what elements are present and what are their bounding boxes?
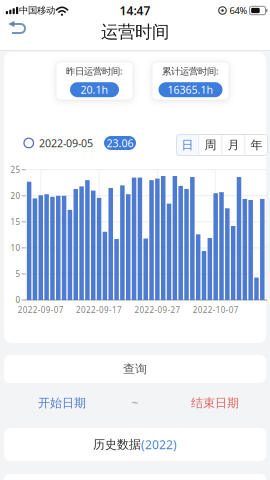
- staticText: 周: [204, 138, 216, 152]
- staticText: 运营时间: [101, 21, 169, 43]
- button[interactable]: 日: [176, 134, 198, 155]
- staticText: ~: [131, 395, 138, 411]
- button[interactable]: 查询: [4, 355, 266, 383]
- staticText: 昨日运营时间:: [66, 65, 123, 77]
- staticText: 0: [15, 295, 20, 305]
- staticText: 14:47: [119, 2, 150, 18]
- staticText: 年: [250, 138, 262, 152]
- staticText: 16365.1h: [167, 83, 213, 97]
- staticText: 10: [10, 243, 20, 253]
- button[interactable]: 历史数据: [4, 428, 266, 461]
- staticText: 日: [181, 138, 193, 152]
- staticText: 历史数据: [93, 437, 141, 452]
- staticText: 结束日期: [191, 396, 239, 410]
- staticText: 15: [10, 216, 20, 227]
- staticText: 2022-09-17: [76, 305, 122, 315]
- button[interactable]: 年: [245, 134, 267, 155]
- staticText: 20: [10, 190, 20, 201]
- button[interactable]: 结束日期: [191, 396, 239, 410]
- staticText: 23.06: [106, 136, 133, 150]
- button[interactable]: 返回: [4, 15, 30, 39]
- staticText: 5: [15, 269, 20, 279]
- button[interactable]: 开始日期: [38, 396, 86, 410]
- staticText: 2022-09-05: [39, 136, 93, 150]
- staticText: 累计运营时间:: [162, 65, 219, 77]
- button[interactable]: 周: [199, 134, 221, 155]
- staticText: 2022-09-07: [18, 305, 64, 315]
- staticText: 20.1h: [80, 83, 108, 97]
- button[interactable]: 2022-09-05: [24, 136, 136, 150]
- staticText: 64%: [229, 4, 247, 17]
- staticText: 开始日期: [38, 396, 86, 410]
- staticText: (2022): [141, 436, 177, 452]
- staticText: 查询: [123, 362, 147, 376]
- staticText: 中国移动: [19, 5, 55, 16]
- staticText: 25: [10, 164, 20, 175]
- staticText: 2022-09-27: [134, 305, 180, 315]
- button[interactable]: 月: [222, 134, 244, 155]
- staticText: 月: [227, 138, 239, 152]
- staticText: 2022-10-07: [193, 305, 239, 315]
